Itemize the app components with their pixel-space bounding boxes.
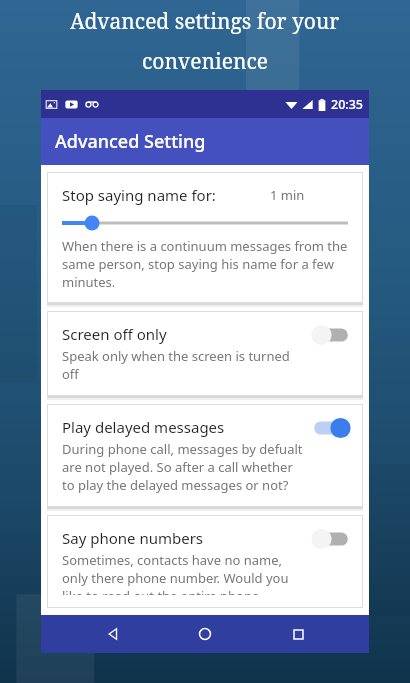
button[interactable]: Play delayed messages switch bbox=[311, 417, 351, 439]
staticText: Advanced Setting bbox=[55, 129, 206, 154]
button[interactable]: Screen off only bbox=[48, 312, 362, 395]
button[interactable]: Screen off only switch bbox=[311, 324, 351, 346]
staticText: Advanced settings for your bbox=[70, 7, 340, 36]
button[interactable]: Play delayed messages bbox=[48, 405, 362, 506]
button[interactable]: Say phone numbers bbox=[48, 516, 362, 607]
button[interactable]: Play delayed messages bbox=[48, 405, 362, 506]
staticText: 1 min bbox=[270, 186, 305, 204]
staticText: convenience bbox=[142, 47, 268, 76]
staticText: 20:35 bbox=[331, 96, 364, 113]
button[interactable]: Home bbox=[184, 615, 226, 653]
staticText: Say phone numbers bbox=[62, 528, 204, 548]
button[interactable]: Stop saying name for: bbox=[48, 173, 362, 302]
staticText: Stop saying name for: bbox=[62, 185, 216, 205]
button[interactable]: Screen off only bbox=[48, 312, 362, 395]
staticText: Sometimes, contacts have no name, only t… bbox=[62, 551, 303, 595]
button[interactable]: Duration slider bbox=[62, 215, 348, 231]
button[interactable]: Back bbox=[92, 615, 134, 653]
staticText: Speak only when the screen is turned off bbox=[62, 347, 303, 383]
staticText: When there is a continuum messages from … bbox=[62, 237, 348, 291]
staticText: During phone call, messages by defualt a… bbox=[62, 440, 303, 494]
button[interactable]: Recents bbox=[277, 615, 319, 653]
button[interactable]: Say phone numbers bbox=[48, 516, 362, 607]
staticText: Play delayed messages bbox=[62, 417, 225, 437]
staticText: Screen off only bbox=[62, 324, 167, 344]
button[interactable]: Say phone numbers switch bbox=[311, 528, 351, 550]
